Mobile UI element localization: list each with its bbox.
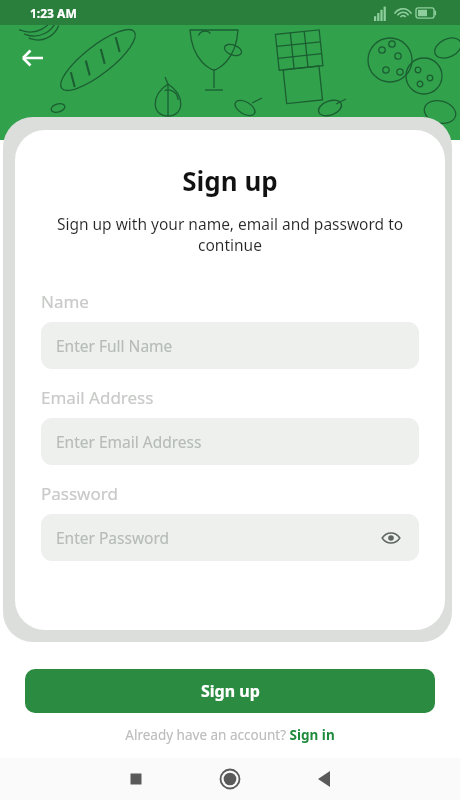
staticText: Enter Email Address (56, 431, 202, 452)
staticText: Sign up (41, 163, 419, 198)
button[interactable]: Enter Email Address (41, 418, 419, 465)
staticText: 1:23 AM (30, 5, 77, 21)
staticText: Name (41, 290, 89, 313)
staticText: Already have an account? Sign in (125, 726, 335, 744)
staticText: Sign up (201, 680, 260, 702)
button[interactable]: Enter Full Name (41, 322, 419, 369)
button[interactable]: Sign up (25, 669, 435, 713)
staticText: Enter Full Name (56, 335, 173, 356)
button[interactable]: Back (12, 37, 54, 79)
staticText: Password (41, 482, 118, 505)
staticText: Enter Password (56, 527, 170, 548)
button[interactable]: Already have an account? Sign in (25, 726, 435, 744)
button[interactable]: Show password (378, 525, 404, 551)
staticText: Email Address (41, 386, 154, 409)
staticText: Sign up with your name, email and passwo… (41, 213, 419, 256)
button[interactable]: Enter Password (41, 514, 419, 561)
